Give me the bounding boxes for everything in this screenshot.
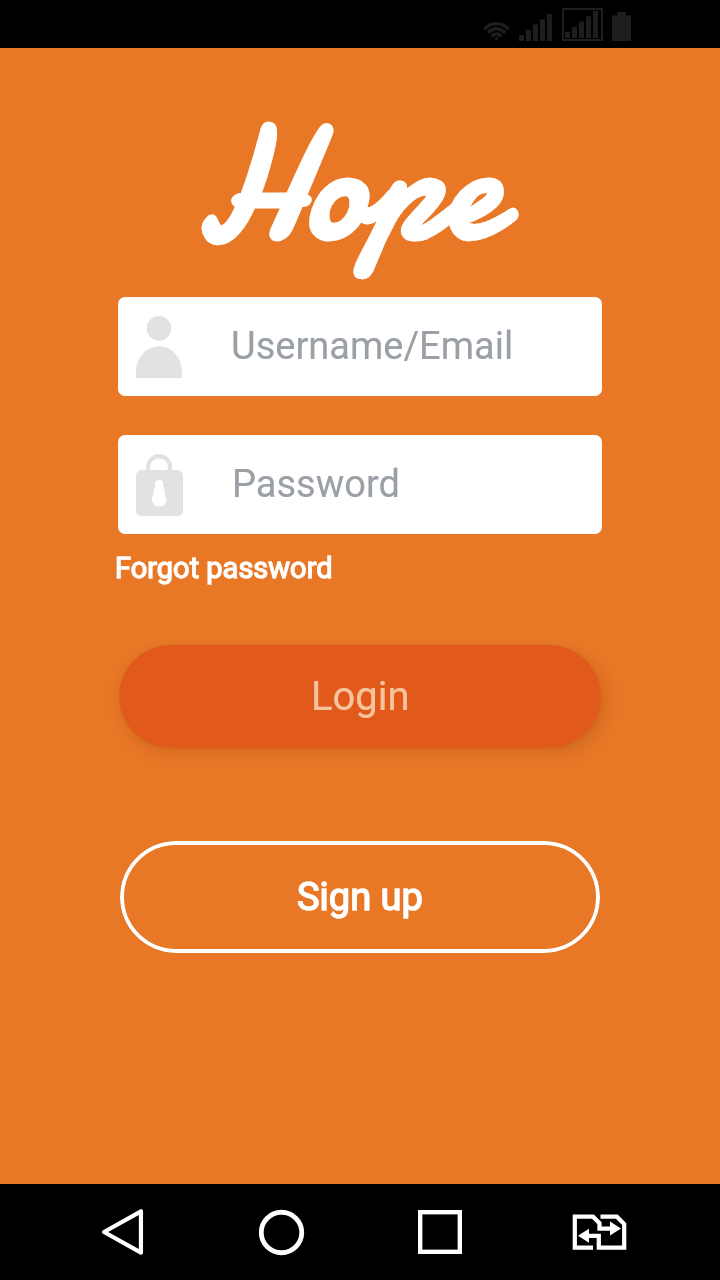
- button[interactable]: Back: [74, 1184, 170, 1280]
- button[interactable]: Recents: [392, 1184, 488, 1280]
- button[interactable]: Login: [119, 645, 601, 748]
- staticText: Username/Email: [231, 324, 514, 369]
- button[interactable]: Home: [233, 1184, 329, 1280]
- staticText: Sign up: [297, 875, 423, 920]
- button[interactable]: Username/Email: [118, 297, 602, 396]
- staticText: Password: [232, 462, 400, 507]
- staticText: Forgot password: [115, 551, 333, 585]
- button[interactable]: Password: [118, 435, 602, 534]
- button[interactable]: Forgot password: [113, 549, 335, 587]
- button[interactable]: Switch apps: [551, 1184, 647, 1280]
- staticText: Hope: [198, 74, 503, 295]
- staticText: Hope: [198, 74, 503, 295]
- button[interactable]: Sign up: [120, 841, 600, 953]
- staticText: Login: [311, 673, 410, 720]
